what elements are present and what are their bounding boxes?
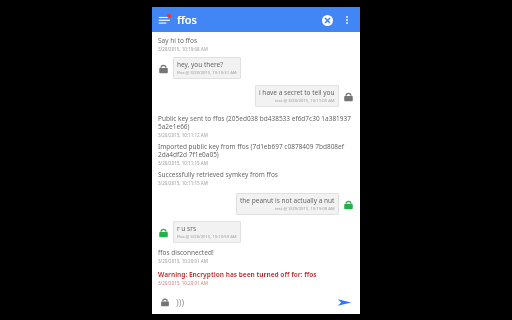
staticText: hey, you there?: [177, 60, 224, 69]
staticText: Warning: Encryption has been turned off …: [158, 270, 317, 279]
staticText: ffos @ 3/20/2015, 10:19:59 AM: [177, 234, 237, 240]
button[interactable]: Close: [318, 11, 336, 29]
staticText: 3/20/2015, 10:20:01 AM: [158, 280, 208, 286]
staticText: Imported public key from ffos (7d1eb697 …: [158, 142, 354, 159]
staticText: 3/20/2015, 10:11:12 AM: [158, 132, 208, 138]
button[interactable]: Send: [334, 292, 354, 312]
staticText: test @ 3/20/2015, 10:11:05 AM: [275, 98, 335, 104]
staticText: Say hi to ffos: [158, 36, 198, 45]
button[interactable]: the peanut is not actually a nut: [236, 193, 339, 215]
button[interactable]: Encryption: [158, 295, 172, 309]
button[interactable]: i have a secret to tell you: [255, 85, 339, 107]
button[interactable]: r u srs: [173, 221, 241, 243]
staticText: ffos disconnected!: [158, 248, 214, 257]
button[interactable]: Menu: [157, 12, 173, 28]
staticText: ffos @ 3/20/2015, 10:10:31 AM: [177, 70, 237, 76]
staticText: test @ 3/20/2015, 10:19:08 AM: [275, 206, 335, 212]
button[interactable]: hey, you there?: [173, 57, 241, 79]
staticText: r u srs: [177, 224, 196, 233]
staticText: the peanut is not actually a nut: [240, 196, 335, 205]
staticText: 3/20/2015, 10:20:01 AM: [158, 258, 208, 264]
staticText: ffos: [177, 12, 197, 27]
staticText: 3/20/2015, 10:11:15 AM: [158, 160, 208, 166]
staticText: ))): [176, 296, 185, 308]
staticText: 3/20/2015, 10:11:15 AM: [158, 180, 208, 186]
staticText: Successfully retrieved symkey from ffos: [158, 170, 278, 179]
staticText: i have a secret to tell you: [259, 88, 335, 97]
button[interactable]: More options: [339, 12, 355, 28]
staticText: Public key sent to ffos (205ed038 bd4385…: [158, 114, 354, 131]
staticText: 3/20/2015, 10:19:08 AM: [158, 46, 208, 52]
